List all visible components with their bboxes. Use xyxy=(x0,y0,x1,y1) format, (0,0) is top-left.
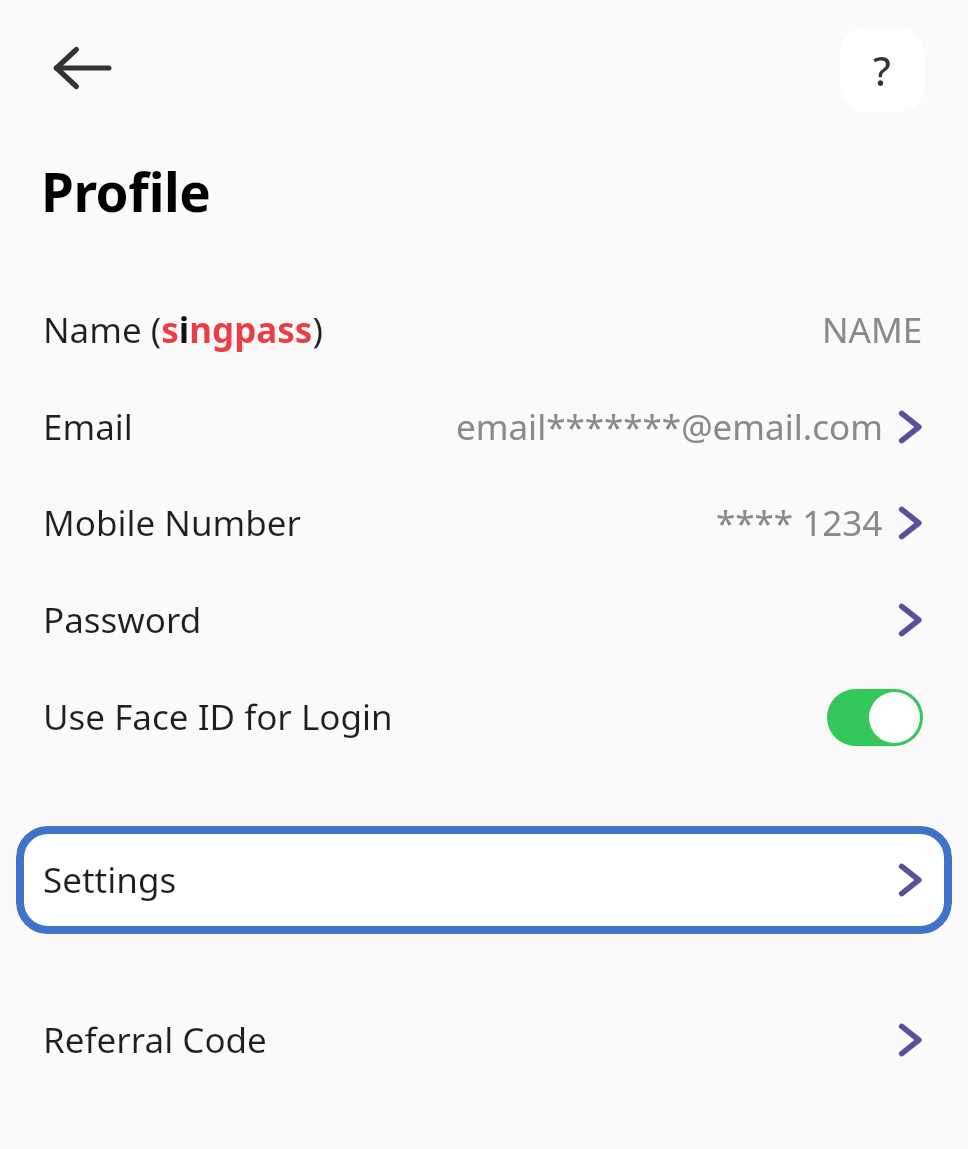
staticText: Name (singpass) xyxy=(43,306,323,354)
staticText: Referral Code xyxy=(43,1016,267,1064)
button[interactable]: Mobile Number xyxy=(0,481,968,565)
button[interactable]: Use Face ID for Login xyxy=(0,675,968,759)
button[interactable]: Email xyxy=(0,385,968,469)
button[interactable]: Name (singpass) xyxy=(0,288,968,372)
button[interactable]: Back xyxy=(37,23,127,113)
button[interactable]: Referral Code xyxy=(0,998,968,1082)
staticText: ? xyxy=(873,43,891,97)
button[interactable]: Help xyxy=(840,28,924,112)
staticText: Use Face ID for Login xyxy=(43,693,393,741)
staticText: Password xyxy=(43,596,202,644)
button[interactable]: Password xyxy=(0,578,968,662)
staticText: email*******@email.com xyxy=(456,403,883,451)
staticText: NAME xyxy=(822,306,923,354)
button[interactable]: Settings xyxy=(16,826,952,934)
other: Use Face ID for Login toggle, on xyxy=(827,689,923,746)
staticText: Email xyxy=(43,403,133,451)
staticText: **** 1234 xyxy=(716,499,883,547)
staticText: Mobile Number xyxy=(43,499,302,547)
staticText: Profile xyxy=(41,155,211,227)
staticText: Settings xyxy=(43,856,177,904)
